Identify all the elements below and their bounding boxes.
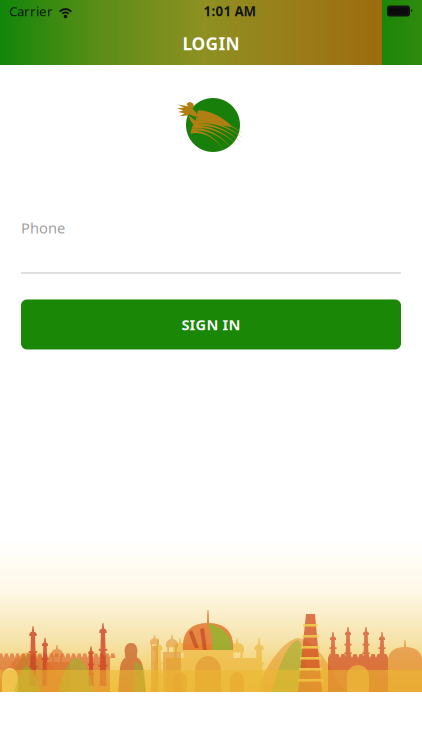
staticText: SIGN IN <box>181 315 240 334</box>
button[interactable]: SIGN IN <box>21 299 401 349</box>
staticText: Phone <box>21 218 65 237</box>
staticText: Carrier <box>9 2 53 20</box>
staticText: 1:01 AM <box>203 2 256 20</box>
staticText: LOGIN <box>182 32 239 55</box>
